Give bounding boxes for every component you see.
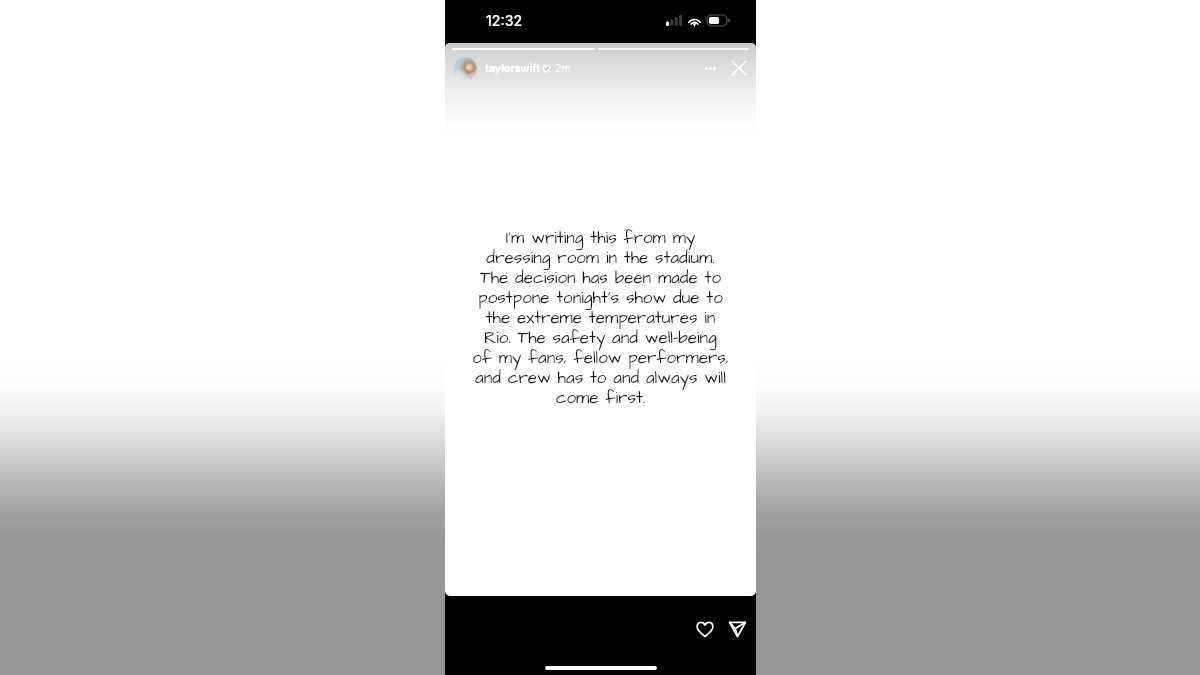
staticText: 2m <box>555 62 571 75</box>
button[interactable]: Close <box>726 55 752 81</box>
button[interactable]: Next story <box>445 43 756 596</box>
button[interactable]: Send message <box>723 615 751 643</box>
staticText: I’m writing this from my dressing room i… <box>445 226 756 410</box>
button[interactable]: More options <box>697 55 723 81</box>
button[interactable]: taylorswift profile picture <box>454 57 551 80</box>
other: taylorswift profile picture <box>454 57 477 80</box>
staticText: taylorswift <box>485 62 540 75</box>
staticText: 12:32 <box>486 12 523 29</box>
button[interactable]: Like <box>691 615 719 643</box>
